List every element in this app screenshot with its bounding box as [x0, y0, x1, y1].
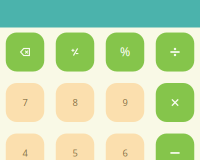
- staticText: 6: [122, 147, 127, 159]
- staticText: 5: [72, 147, 77, 159]
- button[interactable]: 4: [6, 133, 44, 160]
- button[interactable]: Divide: [156, 32, 194, 71]
- button[interactable]: Multiply: [156, 83, 194, 122]
- button[interactable]: 9: [106, 83, 144, 122]
- button[interactable]: 6: [106, 133, 144, 160]
- button[interactable]: Toggle sign: [56, 32, 94, 71]
- button[interactable]: Percent: [106, 32, 144, 71]
- button[interactable]: Subtract: [156, 133, 194, 160]
- staticText: 7: [22, 96, 27, 109]
- button[interactable]: Delete: [6, 32, 44, 71]
- staticText: 8: [72, 96, 77, 109]
- button[interactable]: 7: [6, 83, 44, 122]
- staticText: 9: [122, 96, 127, 109]
- button[interactable]: 5: [56, 133, 94, 160]
- button[interactable]: 8: [56, 83, 94, 122]
- staticText: 4: [22, 147, 27, 159]
- staticText: %: [120, 43, 130, 59]
